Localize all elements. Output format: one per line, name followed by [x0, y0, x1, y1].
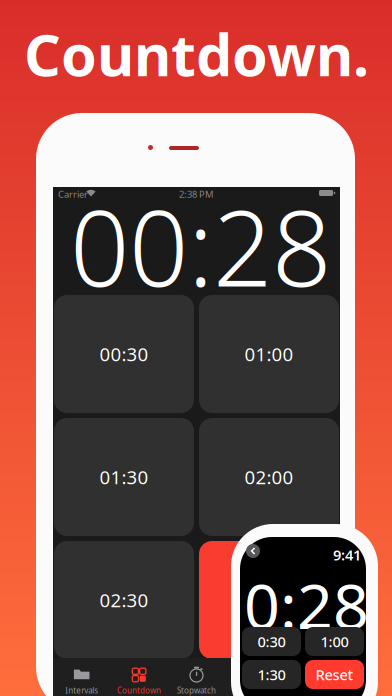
staticText: Countdown	[117, 685, 161, 696]
staticText: 00:28	[70, 177, 331, 315]
staticText: 00:30	[99, 342, 148, 366]
button[interactable]: 0:30	[242, 627, 301, 656]
staticText: 1:30	[257, 665, 285, 684]
staticText: Countdown.	[24, 16, 369, 92]
button[interactable]: 00:30	[54, 295, 194, 413]
button[interactable]: 02:00	[199, 418, 339, 536]
button[interactable]: 1:00	[305, 627, 364, 656]
staticText: 1:00	[320, 632, 348, 651]
button[interactable]: Countdown	[110, 658, 168, 696]
staticText: 02:00	[244, 465, 293, 489]
staticText: 2:38 PM	[179, 188, 213, 200]
staticText: Reset	[315, 665, 353, 684]
button[interactable]: 02:30	[54, 541, 194, 659]
staticText: Intervals	[65, 685, 98, 696]
staticText: Carrier	[58, 188, 88, 200]
button[interactable]: 1:30	[242, 660, 301, 689]
staticText: About	[300, 685, 323, 696]
button[interactable]: 01:00	[199, 295, 339, 413]
staticText: 01:30	[99, 465, 148, 489]
button[interactable]: About	[283, 658, 340, 696]
staticText: 0:28	[244, 563, 369, 646]
staticText: 01:00	[244, 342, 293, 366]
button[interactable]: Settings	[225, 658, 283, 696]
button[interactable]: Reset	[305, 660, 364, 689]
staticText: 0:30	[257, 632, 285, 651]
button[interactable]: Reset	[199, 541, 339, 659]
staticText: Settings	[238, 685, 269, 696]
button[interactable]: Intervals	[53, 658, 110, 696]
button[interactable]: Back	[246, 544, 260, 558]
staticText: 02:30	[99, 588, 148, 612]
staticText: 9:41	[333, 545, 361, 564]
button[interactable]: Stopwatch	[168, 658, 225, 696]
button[interactable]: 01:30	[54, 418, 194, 536]
staticText: Stopwatch	[177, 685, 216, 696]
